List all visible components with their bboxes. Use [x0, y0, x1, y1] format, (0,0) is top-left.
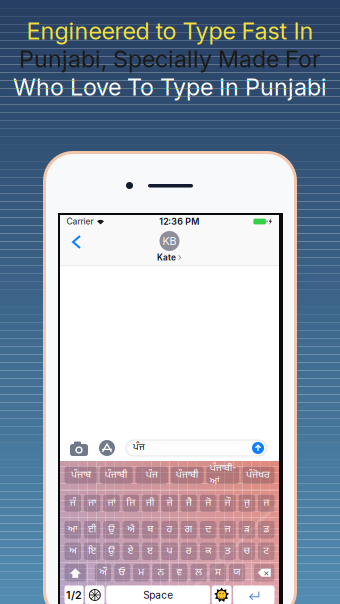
staticText: ਅ [69, 545, 76, 558]
staticText: ਜਾਂ [107, 497, 115, 510]
button[interactable]: ਚ [239, 542, 255, 560]
button[interactable]: ਏ [123, 542, 139, 560]
button[interactable]: ਪ [161, 542, 178, 560]
button[interactable]: ਪੰਜਾਬੀਆਂ [206, 466, 239, 484]
staticText: ਔ [99, 566, 106, 579]
staticText: Who Love To Type In Punjabi [13, 73, 327, 101]
button[interactable]: Space [106, 585, 210, 604]
button[interactable]: ਜੈ [181, 494, 197, 512]
staticText: ਪੰਜਾਬ [71, 469, 91, 482]
button[interactable]: ਜੌ [219, 494, 236, 512]
button[interactable]: ਪੰਜ [135, 466, 168, 484]
staticText: ਲ [195, 566, 202, 579]
button[interactable]: KB [157, 231, 182, 262]
button[interactable]: ਜੁ [239, 494, 255, 512]
staticText: ਰ [186, 545, 192, 558]
button[interactable]: ਜੇ [161, 494, 178, 512]
button[interactable]: ਟ [258, 542, 274, 560]
button[interactable]: ੜ [239, 521, 255, 538]
button[interactable]: App Store [99, 440, 115, 456]
staticText: ਡ [263, 523, 269, 536]
button[interactable]: ਈ [84, 521, 100, 538]
staticText: Kate [157, 252, 176, 262]
staticText: Engineered to Type Fast In [26, 17, 313, 45]
button[interactable]: ਜ [258, 494, 274, 512]
button[interactable]: ਜਾਂ [103, 494, 120, 512]
button[interactable]: ਯ [229, 564, 245, 581]
button[interactable]: ਜੰ [64, 494, 81, 512]
staticText: ਜਿ [126, 497, 135, 510]
staticText: ਟ [263, 545, 269, 558]
button[interactable]: Return [233, 585, 274, 604]
button[interactable]: ਐ [123, 521, 139, 538]
button[interactable]: Back [68, 232, 88, 252]
button[interactable]: 1/2 [64, 585, 83, 604]
button[interactable]: ਪੰਜਾਬੀ [100, 466, 133, 484]
staticText: ਮ [138, 566, 144, 579]
button[interactable]: ਜ [219, 521, 236, 538]
button[interactable]: ਤ [219, 542, 236, 560]
button[interactable]: ੲ [142, 542, 158, 560]
staticText: ਕ [205, 545, 211, 558]
button[interactable]: ਵ [171, 564, 188, 581]
button[interactable]: ਓ [114, 564, 130, 581]
staticText: ਹ [166, 523, 172, 536]
button[interactable]: ਗ [181, 521, 197, 538]
button[interactable]: ਆ [64, 521, 81, 538]
staticText: ਬ [147, 523, 153, 536]
button[interactable]: ਜਿ [123, 494, 139, 512]
button[interactable]: ਔ [95, 564, 111, 581]
staticText: Punjabi, Specially Made For [19, 45, 321, 73]
staticText: ਤ [225, 545, 230, 558]
button[interactable]: ਪੰਜੋਖਰ [242, 466, 274, 484]
button[interactable]: ਉ [103, 521, 120, 538]
button[interactable]: ਉ [103, 542, 120, 560]
button[interactable]: ਇ [84, 542, 100, 560]
staticText: ਇ [88, 545, 96, 558]
staticText: ਉ [108, 545, 115, 558]
button[interactable]: Shift [64, 564, 86, 581]
staticText: ਈ [88, 523, 96, 536]
staticText: ਉ [108, 523, 115, 536]
staticText: ਜੀ [146, 497, 155, 510]
staticText: ਜ [263, 497, 269, 510]
button[interactable]: ਬ [142, 521, 158, 538]
button[interactable]: ਦ [200, 521, 216, 538]
button[interactable]: ਮ [133, 564, 149, 581]
button[interactable]: ਕ [200, 542, 216, 560]
button[interactable]: ਨ [152, 564, 169, 581]
button[interactable]: Camera [70, 440, 88, 456]
staticText: ਏ [128, 545, 134, 558]
button[interactable]: Next keyboard [85, 585, 105, 604]
staticText: ਜਾ [88, 497, 96, 510]
button[interactable]: ਹ [161, 521, 178, 538]
button[interactable]: ਸ [210, 564, 226, 581]
button[interactable]: ਪੰਜਾਬੀ [171, 466, 204, 484]
button[interactable]: Send [252, 442, 264, 454]
staticText: ਜੌ [225, 497, 231, 510]
staticText: ਓ [119, 566, 126, 579]
staticText: KB [162, 234, 176, 247]
button[interactable]: ਪੰਜਾਬ [64, 466, 97, 484]
staticText: 1/2 [66, 588, 82, 601]
button[interactable]: ਜੋ [200, 494, 216, 512]
staticText: ਐ [127, 523, 134, 536]
staticText: ਪੰਜਾਬੀ [105, 469, 128, 482]
staticText: ਚ [243, 545, 250, 558]
button[interactable]: ਰ [181, 542, 197, 560]
button[interactable]: ਲ [191, 564, 207, 581]
staticText: ਪੰਜੋਖਰ [246, 469, 270, 482]
staticText: ਜੋ [205, 497, 211, 510]
button[interactable]: Emoji [212, 585, 231, 604]
button[interactable]: Delete [254, 564, 274, 581]
button[interactable]: ਜੀ [142, 494, 158, 512]
staticText: ਵ [177, 566, 183, 579]
button[interactable]: ਡ [258, 521, 274, 538]
staticText: ਪੰਜਾਬੀਆਂ [210, 462, 236, 488]
staticText: ਆ [68, 523, 78, 536]
button[interactable]: ਜਾ [84, 494, 100, 512]
button[interactable]: ਅ [64, 542, 81, 560]
staticText: ਜੈ [186, 497, 192, 510]
staticText: ਨ [157, 566, 163, 579]
staticText: Carrier [66, 216, 93, 227]
